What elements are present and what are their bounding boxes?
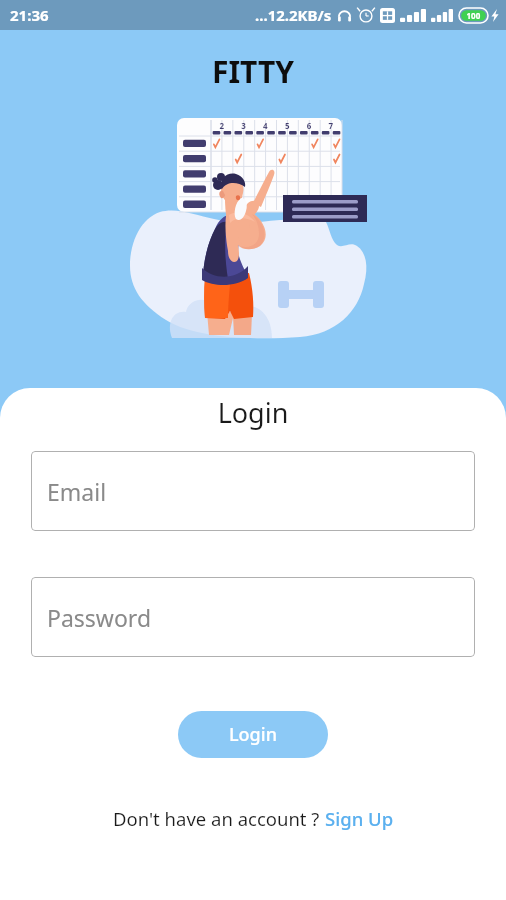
staticText: Email xyxy=(47,476,107,507)
staticText: Login xyxy=(0,394,506,431)
staticText: Don't have an account ? xyxy=(113,806,325,831)
staticText: Login xyxy=(229,722,277,747)
button[interactable]: Sign Up xyxy=(325,806,394,831)
button[interactable]: Login xyxy=(178,711,328,758)
button[interactable]: Email xyxy=(31,451,475,531)
button[interactable]: Password xyxy=(31,577,475,657)
staticText: ...12.2KB/s xyxy=(255,5,332,25)
staticText: Sign Up xyxy=(325,806,394,831)
staticText: 21:36 xyxy=(10,5,49,25)
staticText: FITTY xyxy=(0,51,506,92)
staticText: Password xyxy=(47,602,152,633)
